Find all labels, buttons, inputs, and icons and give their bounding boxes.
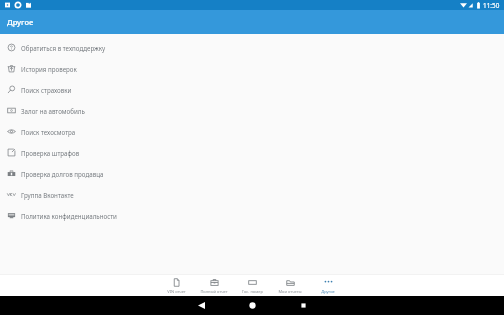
staticText: Политика конфиденциальности — [21, 212, 117, 220]
staticText: Мои отчеты — [278, 289, 302, 294]
staticText: Другое — [321, 289, 335, 294]
button[interactable]: Гос. номер — [233, 275, 271, 296]
staticText: Проверка долгов продавца — [21, 170, 104, 178]
button[interactable]: Проверка долгов продавца — [0, 163, 504, 184]
button[interactable]: VIN отчет — [157, 275, 195, 296]
button[interactable]: Поиск страховки — [0, 79, 504, 100]
staticText: Гос. номер — [242, 289, 263, 294]
staticText: История проверок — [21, 65, 77, 73]
button[interactable]: Home — [243, 296, 262, 315]
staticText: Проверка штрафов — [21, 149, 80, 157]
button[interactable]: История проверок — [0, 58, 504, 79]
button[interactable]: Группа Вконтакте — [0, 184, 504, 205]
button[interactable]: Поиск техосмотра — [0, 121, 504, 142]
staticText: Полный отчет — [200, 289, 228, 294]
button[interactable]: Полный отчет — [195, 275, 233, 296]
staticText: Поиск страховки — [21, 86, 72, 94]
staticText: Обратиться в техподдержку — [21, 44, 106, 52]
staticText: Другое — [7, 17, 34, 27]
button[interactable]: Мои отчеты — [271, 275, 309, 296]
staticText: 11:50 — [483, 1, 500, 10]
button[interactable]: Другое — [309, 275, 347, 296]
button[interactable]: Back — [192, 296, 211, 315]
staticText: Группа Вконтакте — [21, 191, 74, 199]
button[interactable]: Залог на автомобиль — [0, 100, 504, 121]
staticText: Залог на автомобиль — [21, 107, 85, 115]
button[interactable]: Проверка штрафов — [0, 142, 504, 163]
button[interactable]: Обратиться в техподдержку — [0, 37, 504, 58]
staticText: VIN отчет — [167, 289, 186, 294]
button[interactable]: Recents — [294, 296, 313, 315]
staticText: Поиск техосмотра — [21, 128, 76, 136]
button[interactable]: Политика конфиденциальности — [0, 205, 504, 226]
